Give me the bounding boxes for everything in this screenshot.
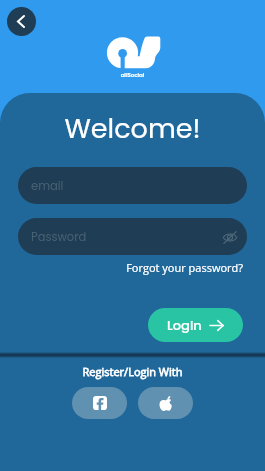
staticText: Welcome!	[0, 110, 265, 148]
button[interactable]: Password	[18, 218, 247, 255]
button[interactable]: Show password	[219, 226, 241, 248]
staticText: Register/Login With	[0, 364, 265, 379]
staticText: Password	[31, 229, 87, 245]
button[interactable]: Sign in with Facebook	[72, 387, 127, 419]
staticText: Login	[167, 316, 202, 334]
staticText: email	[31, 178, 64, 194]
button[interactable]: Forgot your password?	[0, 260, 243, 275]
button[interactable]: Login	[148, 308, 243, 342]
button[interactable]: email	[18, 167, 247, 204]
staticText: allSocial	[0, 71, 265, 79]
button[interactable]: Sign in with Apple	[138, 387, 193, 419]
button[interactable]: Back	[7, 7, 36, 36]
